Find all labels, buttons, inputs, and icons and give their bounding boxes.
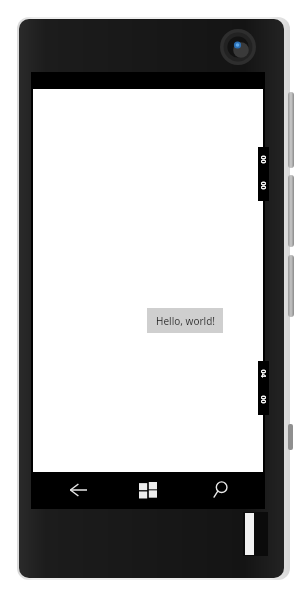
button[interactable]: Power [288, 175, 294, 247]
button[interactable]: Search [189, 472, 251, 507]
staticText: 000 [247, 181, 267, 192]
button[interactable]: Start [117, 472, 179, 507]
staticText: Hello, world! [156, 314, 215, 328]
button[interactable]: Back [47, 472, 109, 507]
staticText: 000 [247, 155, 267, 166]
button[interactable]: Camera shutter [288, 255, 294, 317]
staticText: 005 [247, 395, 267, 406]
button[interactable]: Volume [288, 92, 294, 168]
staticText: 040 [247, 369, 267, 380]
button[interactable]: Hello, world! [147, 308, 223, 333]
